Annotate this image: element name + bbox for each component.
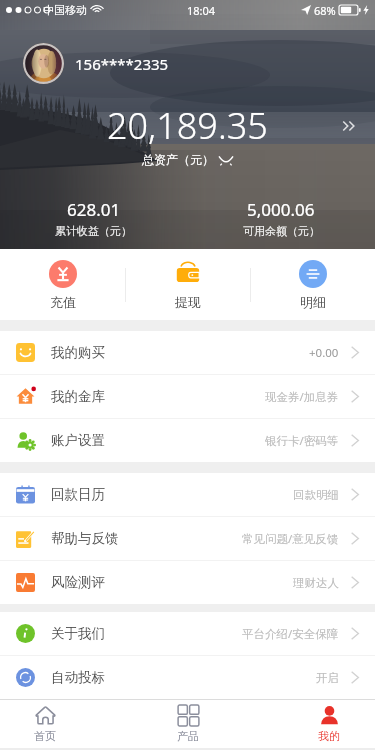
button[interactable]: More: [335, 112, 363, 140]
staticText: 常见问题/意见反馈: [242, 531, 339, 547]
staticText: 5,000.06: [247, 198, 315, 221]
staticText: 可用余额（元）: [243, 224, 320, 238]
button[interactable]: 自动投标: [0, 656, 375, 699]
staticText: 我的金库: [51, 388, 105, 405]
staticText: 账户设置: [51, 432, 105, 449]
button[interactable]: 充值: [0, 260, 125, 310]
button[interactable]: 明细: [251, 260, 375, 310]
button[interactable]: 账户设置: [0, 419, 375, 462]
staticText: 总资产（元）: [142, 152, 214, 167]
staticText: 我的购买: [51, 344, 105, 361]
staticText: 平台介绍/安全保障: [242, 626, 339, 642]
staticText: 现金券/加息券: [265, 389, 339, 405]
button[interactable]: Avatar: [23, 43, 64, 84]
button[interactable]: 5,000.06: [187, 198, 375, 238]
staticText: 18:04: [187, 3, 216, 18]
staticText: 明细: [300, 294, 326, 310]
button[interactable]: 提现: [126, 260, 250, 310]
staticText: 自动投标: [51, 669, 105, 686]
staticText: 156****2335: [75, 54, 169, 74]
staticText: 20,189.35: [107, 101, 268, 150]
staticText: 关于我们: [51, 625, 105, 642]
staticText: 银行卡/密码等: [265, 433, 339, 449]
staticText: 中国移动: [43, 3, 87, 17]
staticText: +0.00: [309, 345, 339, 361]
staticText: 累计收益（元）: [55, 224, 132, 238]
button[interactable]: 首页: [15, 700, 75, 748]
button[interactable]: 628.01: [0, 198, 187, 238]
button[interactable]: 我的购买: [0, 331, 375, 374]
button[interactable]: 关于我们: [0, 612, 375, 655]
staticText: 68%: [314, 3, 336, 18]
staticText: 风险测评: [51, 574, 105, 591]
staticText: 充值: [50, 294, 76, 310]
button[interactable]: 我的金库: [0, 375, 375, 418]
staticText: 回款日历: [51, 486, 105, 503]
staticText: 首页: [34, 729, 56, 743]
staticText: 628.01: [67, 198, 121, 221]
staticText: 我的: [318, 729, 340, 743]
button[interactable]: 回款日历: [0, 473, 375, 516]
button[interactable]: 我的: [299, 700, 359, 748]
button[interactable]: 帮助与反馈: [0, 517, 375, 560]
staticText: 回款明细: [293, 488, 339, 502]
staticText: 开启: [316, 671, 339, 685]
staticText: 产品: [177, 729, 199, 743]
staticText: 理财达人: [293, 576, 339, 590]
button[interactable]: 风险测评: [0, 561, 375, 604]
staticText: 提现: [175, 294, 201, 310]
staticText: 帮助与反馈: [51, 530, 119, 547]
button[interactable]: 产品: [158, 700, 218, 748]
